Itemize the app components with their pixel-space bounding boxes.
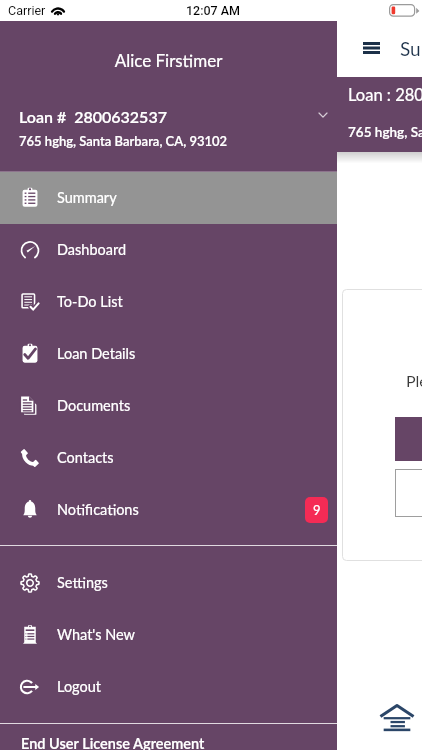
button[interactable]: Notifications (0, 484, 337, 536)
staticText: To-Do List (57, 293, 123, 310)
button[interactable]: Settings (0, 557, 337, 609)
staticText: Carrier (8, 3, 46, 18)
button[interactable]: Logout (0, 661, 337, 713)
staticText: End User License Agreement (21, 735, 205, 750)
staticText: Documents (57, 397, 131, 414)
button[interactable]: Loan Details (0, 328, 337, 380)
staticText: Summary (57, 189, 117, 206)
button[interactable]: Contacts (0, 432, 337, 484)
staticText: Dashboard (57, 241, 127, 258)
staticText: Alice Firstimer (0, 50, 337, 70)
button[interactable]: Open navigation drawer (354, 31, 388, 65)
staticText: Loan Details (57, 345, 136, 362)
staticText: 765 hghg, Santa Barbara, CA, 93102 (348, 124, 422, 140)
staticText: Logout (57, 678, 102, 695)
staticText: What's New (57, 626, 135, 643)
button[interactable]: Summary (0, 172, 337, 224)
staticText: Settings (57, 574, 108, 591)
button[interactable]: Dashboard (0, 224, 337, 276)
staticText: Please enter (406, 371, 422, 390)
button[interactable]: Documents (0, 380, 337, 432)
staticText: Notifications (57, 501, 139, 518)
staticText: 9 (313, 502, 321, 518)
staticText: Contacts (57, 449, 114, 466)
button[interactable]: What's New (0, 609, 337, 661)
staticText: Summary (400, 37, 422, 60)
staticText: 765 hghg, Santa Barbara, CA, 93102 (19, 133, 228, 149)
staticText: 12:07 AM (2, 3, 422, 18)
staticText: Loan : 2800632537 (348, 85, 422, 105)
button[interactable]: To-Do List (0, 276, 337, 328)
staticText: Loan # 2800632537 (19, 107, 167, 126)
